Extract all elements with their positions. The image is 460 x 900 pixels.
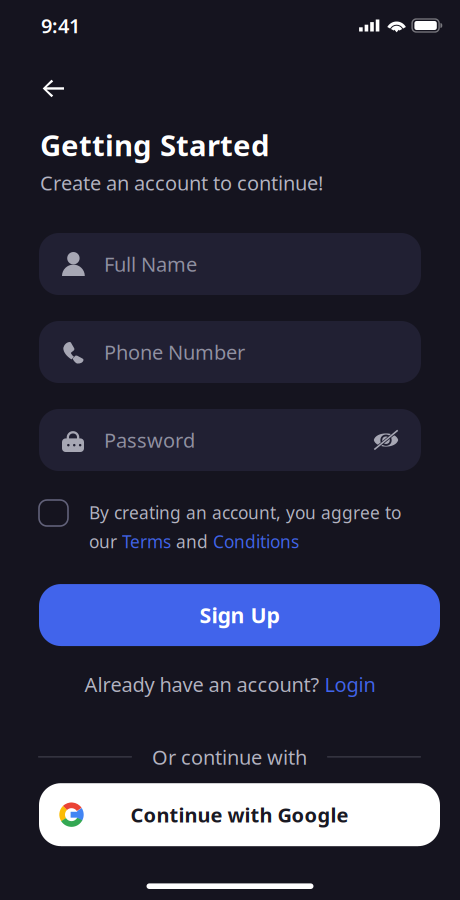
staticText: our [89,530,122,553]
staticText: Already have an account? [84,671,324,698]
staticText: By creating an account, you aggree to [89,501,401,524]
staticText: Or continue with [152,744,307,770]
button[interactable]: Continue with Google [39,783,440,846]
button[interactable]: Conditions [213,530,299,553]
button[interactable]: Terms [122,530,171,553]
button[interactable]: Back [41,70,87,106]
staticText: Sign Up [199,601,279,629]
staticText: Continue with Google [130,801,348,828]
staticText: and [171,530,213,553]
staticText: Conditions [213,530,299,553]
staticText: Password [104,427,195,453]
button[interactable]: Login [324,671,375,698]
staticText: Terms [122,530,171,553]
staticText: Create an account to continue! [40,169,323,196]
staticText: 9:41 [41,12,80,39]
button[interactable]: Sign Up [39,584,440,646]
staticText: Getting Started [40,125,270,164]
button[interactable]: Show password [373,429,399,451]
staticText: Phone Number [104,339,245,365]
button[interactable]: Accept terms and conditions [39,500,68,526]
staticText: Login [324,671,375,698]
staticText: Full Name [104,251,197,277]
